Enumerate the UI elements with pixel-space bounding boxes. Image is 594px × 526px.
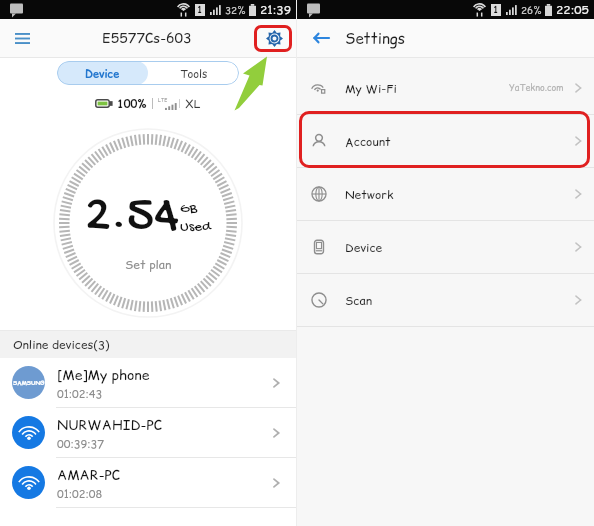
button[interactable]: My Wi-Fi [297,62,594,115]
staticText: GB [180,200,198,218]
button[interactable]: NURWAHID-PC [0,408,296,458]
staticText: 2.54 [85,187,179,248]
staticText: Device [345,239,383,256]
button[interactable]: Set plan [125,256,172,273]
staticText: My Wi-Fi [345,80,397,97]
staticText: 01:02:08 [57,486,103,501]
button[interactable]: Menu [7,23,37,53]
button[interactable]: Account [297,115,594,168]
button[interactable]: Back [306,23,336,53]
staticText: 21:39 [260,1,291,18]
staticText: Account [345,133,391,150]
staticText: Settings [345,28,406,49]
staticText: 22:05 [556,1,589,18]
staticText: 1 [197,4,203,16]
button[interactable]: Network [297,168,594,221]
staticText: 26% [521,3,542,17]
staticText: Used [180,218,211,236]
staticText: 01:02:43 [57,386,103,401]
staticText: SAMSUNG [13,379,45,387]
staticText: Device [85,66,120,81]
staticText: 00:39:37 [57,436,104,451]
staticText: 100% [117,96,147,111]
button[interactable]: AMAR-PC [0,458,296,508]
staticText: 1 [493,4,499,16]
staticText: 32% [225,3,246,17]
button[interactable]: Settings [259,23,289,53]
staticText: AMAR-PC [57,465,121,485]
staticText: Scan [345,292,372,309]
staticText: [Me]My phone [57,365,150,385]
button[interactable]: SAMSUNG [0,358,296,408]
staticText: Online devices(3) [13,336,110,353]
button[interactable]: Tools [148,61,239,85]
staticText: LTE [158,97,168,104]
staticText: XL [185,95,201,112]
button[interactable]: Device [297,221,594,274]
staticText: Tools [180,66,208,81]
button[interactable]: Device [57,61,148,85]
button[interactable]: Scan [297,274,594,327]
staticText: YaTekno.com [509,82,564,95]
staticText: NURWAHID-PC [57,415,163,435]
staticText: Network [345,186,394,203]
staticText: E5577Cs-603 [102,28,192,48]
